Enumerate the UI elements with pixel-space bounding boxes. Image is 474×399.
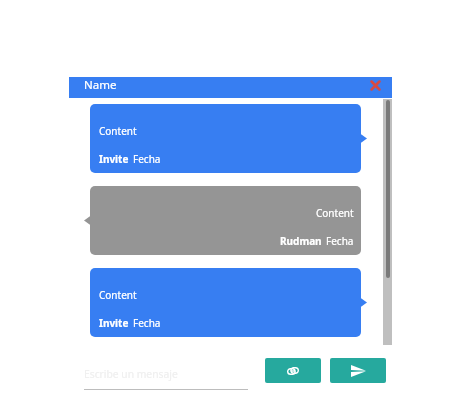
button[interactable]: Content — [90, 186, 361, 255]
staticText: Fecha — [133, 316, 161, 330]
staticText: Escribe un mensaje — [84, 367, 178, 381]
staticText: Content — [99, 124, 137, 138]
staticText: Fecha — [133, 152, 161, 166]
staticText: Content — [99, 288, 137, 302]
staticText: Invite — [99, 316, 129, 330]
button[interactable]: Content — [90, 104, 361, 173]
button[interactable]: Close — [369, 79, 382, 92]
button[interactable]: Name — [69, 77, 392, 98]
staticText: Rudman — [280, 234, 322, 248]
staticText: Invite — [99, 152, 129, 166]
staticText: Fecha — [326, 234, 354, 248]
button[interactable]: Content — [90, 268, 361, 337]
staticText: Name — [84, 77, 117, 93]
button[interactable]: Send — [330, 358, 386, 383]
button[interactable]: Escribe un mensaje — [84, 362, 248, 390]
button[interactable]: Attach — [265, 358, 321, 383]
staticText: Content — [316, 206, 354, 220]
